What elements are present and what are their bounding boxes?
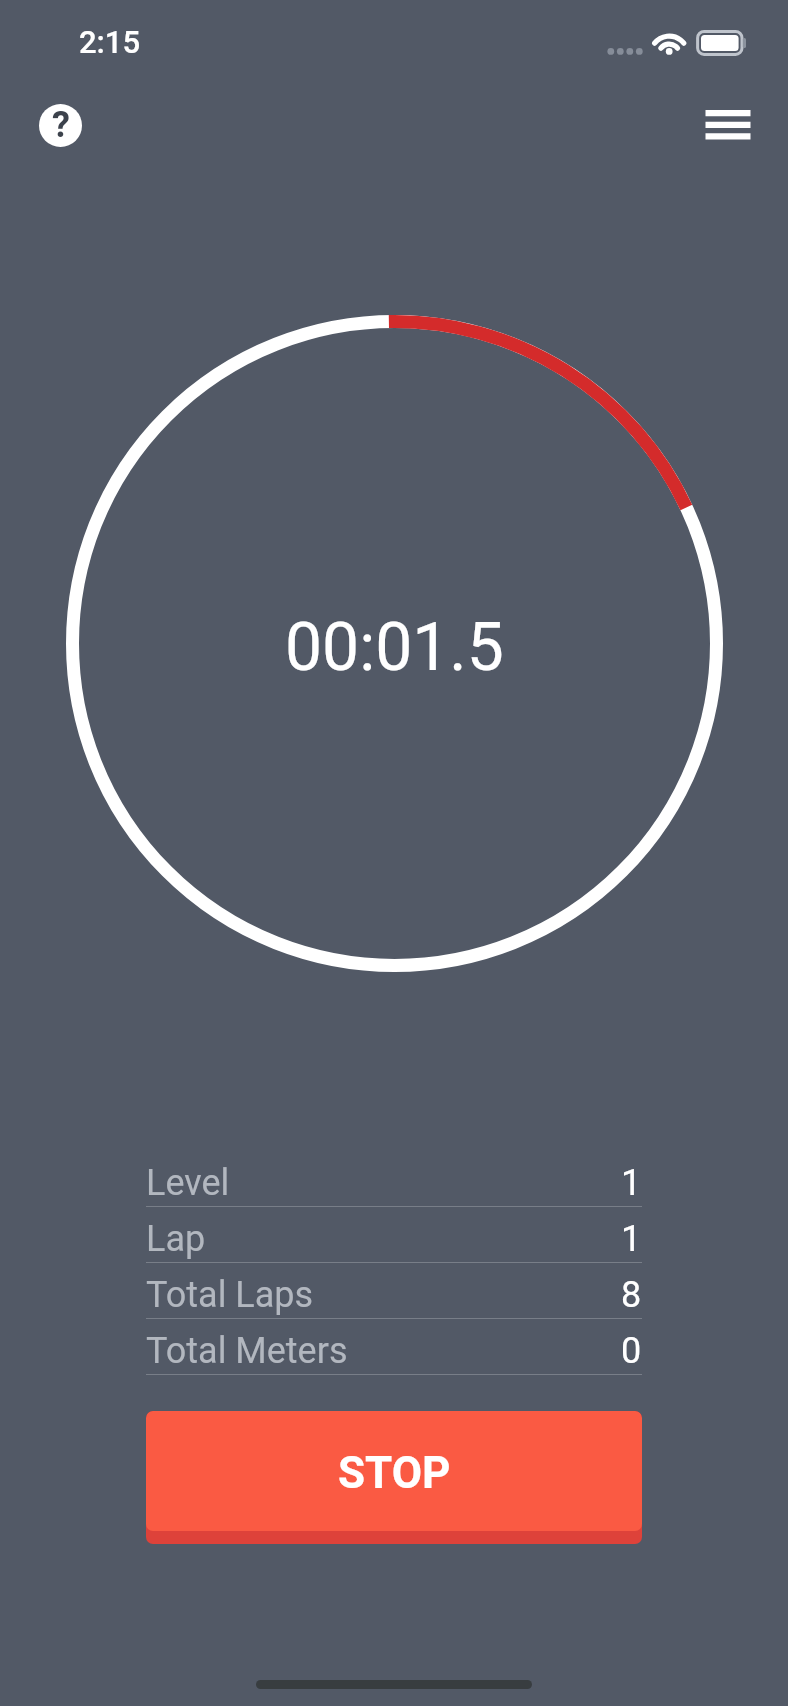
button[interactable]: Help <box>26 91 94 159</box>
button[interactable]: STOP <box>146 1411 642 1544</box>
staticText: 0 <box>621 1330 642 1372</box>
staticText: Level <box>146 1162 230 1204</box>
button[interactable]: Menu <box>694 91 762 159</box>
staticText: 1 <box>621 1162 642 1204</box>
staticText: 2:15 <box>79 24 141 60</box>
staticText: 00:01.5 <box>285 609 504 686</box>
staticText: Lap <box>146 1218 206 1260</box>
staticText: STOP <box>338 1447 451 1499</box>
button[interactable]: Total Meters <box>146 1319 642 1375</box>
button[interactable]: Total Laps <box>146 1263 642 1319</box>
staticText: 8 <box>621 1274 642 1316</box>
staticText: 1 <box>621 1218 642 1260</box>
button[interactable]: Level <box>146 1151 642 1207</box>
staticText: Total Laps <box>146 1274 314 1316</box>
staticText: ? <box>52 104 70 146</box>
button[interactable]: Lap <box>146 1207 642 1263</box>
staticText: Total Meters <box>146 1330 348 1372</box>
